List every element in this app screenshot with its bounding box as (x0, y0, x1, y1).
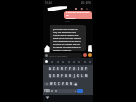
staticText: G (65, 74, 67, 78)
staticText: U (73, 67, 75, 71)
staticText: 16:21 (65, 20, 71, 23)
button[interactable]: Shift (44, 82, 49, 86)
button[interactable]: W (49, 82, 53, 86)
button[interactable]: A (48, 67, 52, 71)
button[interactable]: Voice input (54, 89, 58, 93)
staticText: H (69, 74, 71, 78)
staticText: I (78, 67, 79, 71)
staticText: il faut que je lui envoie un message (66, 11, 90, 19)
button[interactable]: B (65, 82, 69, 86)
staticText: L (81, 74, 83, 78)
staticText: F (61, 74, 63, 78)
staticText: E (57, 67, 59, 71)
staticText: B (66, 82, 68, 86)
staticText: N (70, 82, 72, 86)
button[interactable]: Q (48, 74, 52, 78)
button[interactable]: V (61, 82, 65, 86)
staticText: M (85, 74, 88, 78)
staticText: D (57, 74, 59, 78)
staticText: V (62, 82, 64, 86)
staticText: T (65, 67, 67, 71)
staticText: 4G 60% (81, 1, 91, 5)
button[interactable]: G (64, 74, 68, 78)
button[interactable]: More options (85, 7, 89, 11)
button[interactable]: ?123 (44, 89, 50, 93)
button[interactable]: N (69, 82, 73, 86)
button[interactable]: Attach (83, 53, 87, 57)
button[interactable]: il faut que je lui envoie un message (64, 11, 92, 19)
staticText: P (85, 67, 87, 71)
staticText: . (75, 89, 76, 93)
staticText: J (74, 74, 75, 78)
button[interactable]: K (76, 74, 80, 78)
button[interactable]: R (60, 67, 64, 71)
staticText: W (50, 82, 53, 86)
button[interactable]: F (60, 74, 64, 78)
button[interactable]: J'ai appris des choses ce soir, t'as tel… (50, 25, 86, 51)
staticText: Q (49, 74, 52, 78)
staticText: ?123 (44, 89, 50, 93)
button[interactable]: Send (77, 89, 83, 93)
staticText: Y (69, 67, 71, 71)
button[interactable]: O (80, 67, 84, 71)
button[interactable]: Video call (80, 7, 84, 11)
staticText: O (81, 67, 84, 71)
staticText: K (77, 74, 79, 78)
staticText: Z (53, 67, 55, 71)
button[interactable]: M (84, 74, 88, 78)
button[interactable]: . (73, 89, 77, 93)
button[interactable]: Backspace (73, 82, 78, 86)
staticText: X (54, 82, 56, 86)
button[interactable]: T (64, 67, 68, 71)
staticText: J'ai appris des choses ce soir, t'as tel… (53, 28, 82, 51)
button[interactable]: X (53, 82, 57, 86)
staticText: Type a message (49, 54, 67, 57)
button[interactable]: Google (45, 60, 48, 63)
button[interactable]: C (57, 82, 61, 86)
staticText: R (61, 67, 63, 71)
button[interactable]: Z (52, 67, 56, 71)
button[interactable]: Emoji (50, 89, 54, 93)
button[interactable]: H (68, 74, 72, 78)
button[interactable]: P (84, 67, 88, 71)
staticText: S (53, 74, 55, 78)
button[interactable]: D (56, 74, 60, 78)
button[interactable]: J (72, 74, 76, 78)
button[interactable]: Camera (88, 53, 92, 57)
button[interactable]: L (80, 74, 84, 78)
button[interactable]: E (56, 67, 60, 71)
staticText: 16:24 (45, 1, 52, 5)
button[interactable]: Call (74, 7, 78, 11)
staticText: A (49, 67, 51, 71)
button[interactable]: I (76, 67, 80, 71)
button[interactable]: S (52, 74, 56, 78)
button[interactable]: Y (68, 67, 72, 71)
button[interactable]: Type a message (44, 53, 82, 58)
staticText: C (58, 82, 60, 86)
button[interactable]: U (72, 67, 76, 71)
